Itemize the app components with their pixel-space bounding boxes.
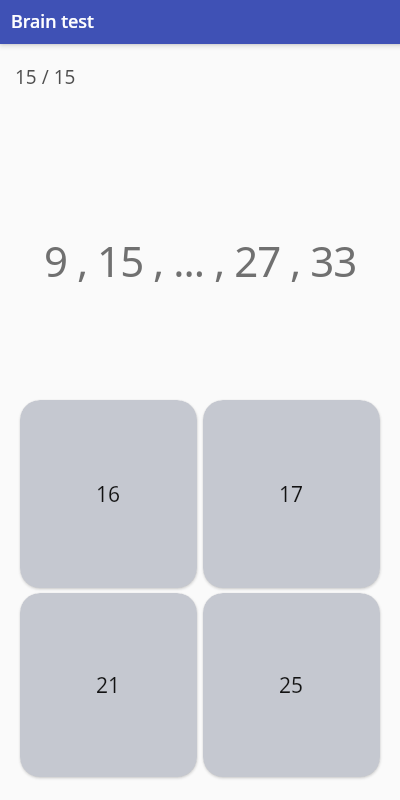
staticText: 15 / 15	[15, 64, 76, 90]
staticText: 25	[279, 671, 304, 700]
staticText: 17	[279, 480, 304, 509]
staticText: Brain test	[11, 9, 95, 34]
staticText: 16	[96, 480, 121, 509]
staticText: 21	[96, 671, 121, 700]
staticText: 9 , 15 , ... , 27 , 33	[44, 232, 357, 289]
